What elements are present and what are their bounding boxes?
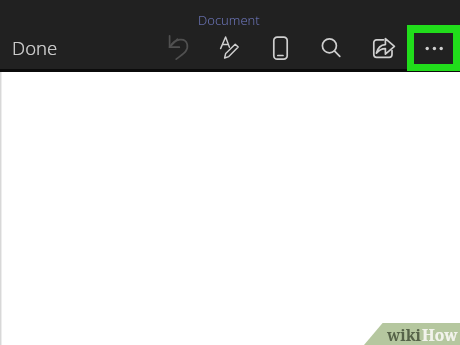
button[interactable]: Undo [164, 31, 194, 61]
button[interactable]: Phone view [265, 31, 295, 61]
staticText: Document [198, 11, 260, 29]
button[interactable]: Search [315, 31, 345, 61]
button[interactable]: More options [407, 25, 460, 71]
button[interactable]: Done [12, 35, 58, 60]
staticText: wiki [387, 324, 422, 345]
button[interactable]: Markup [215, 31, 245, 61]
button[interactable]: Share [368, 31, 398, 61]
staticText: Done [12, 35, 58, 60]
staticText: How [422, 324, 458, 345]
